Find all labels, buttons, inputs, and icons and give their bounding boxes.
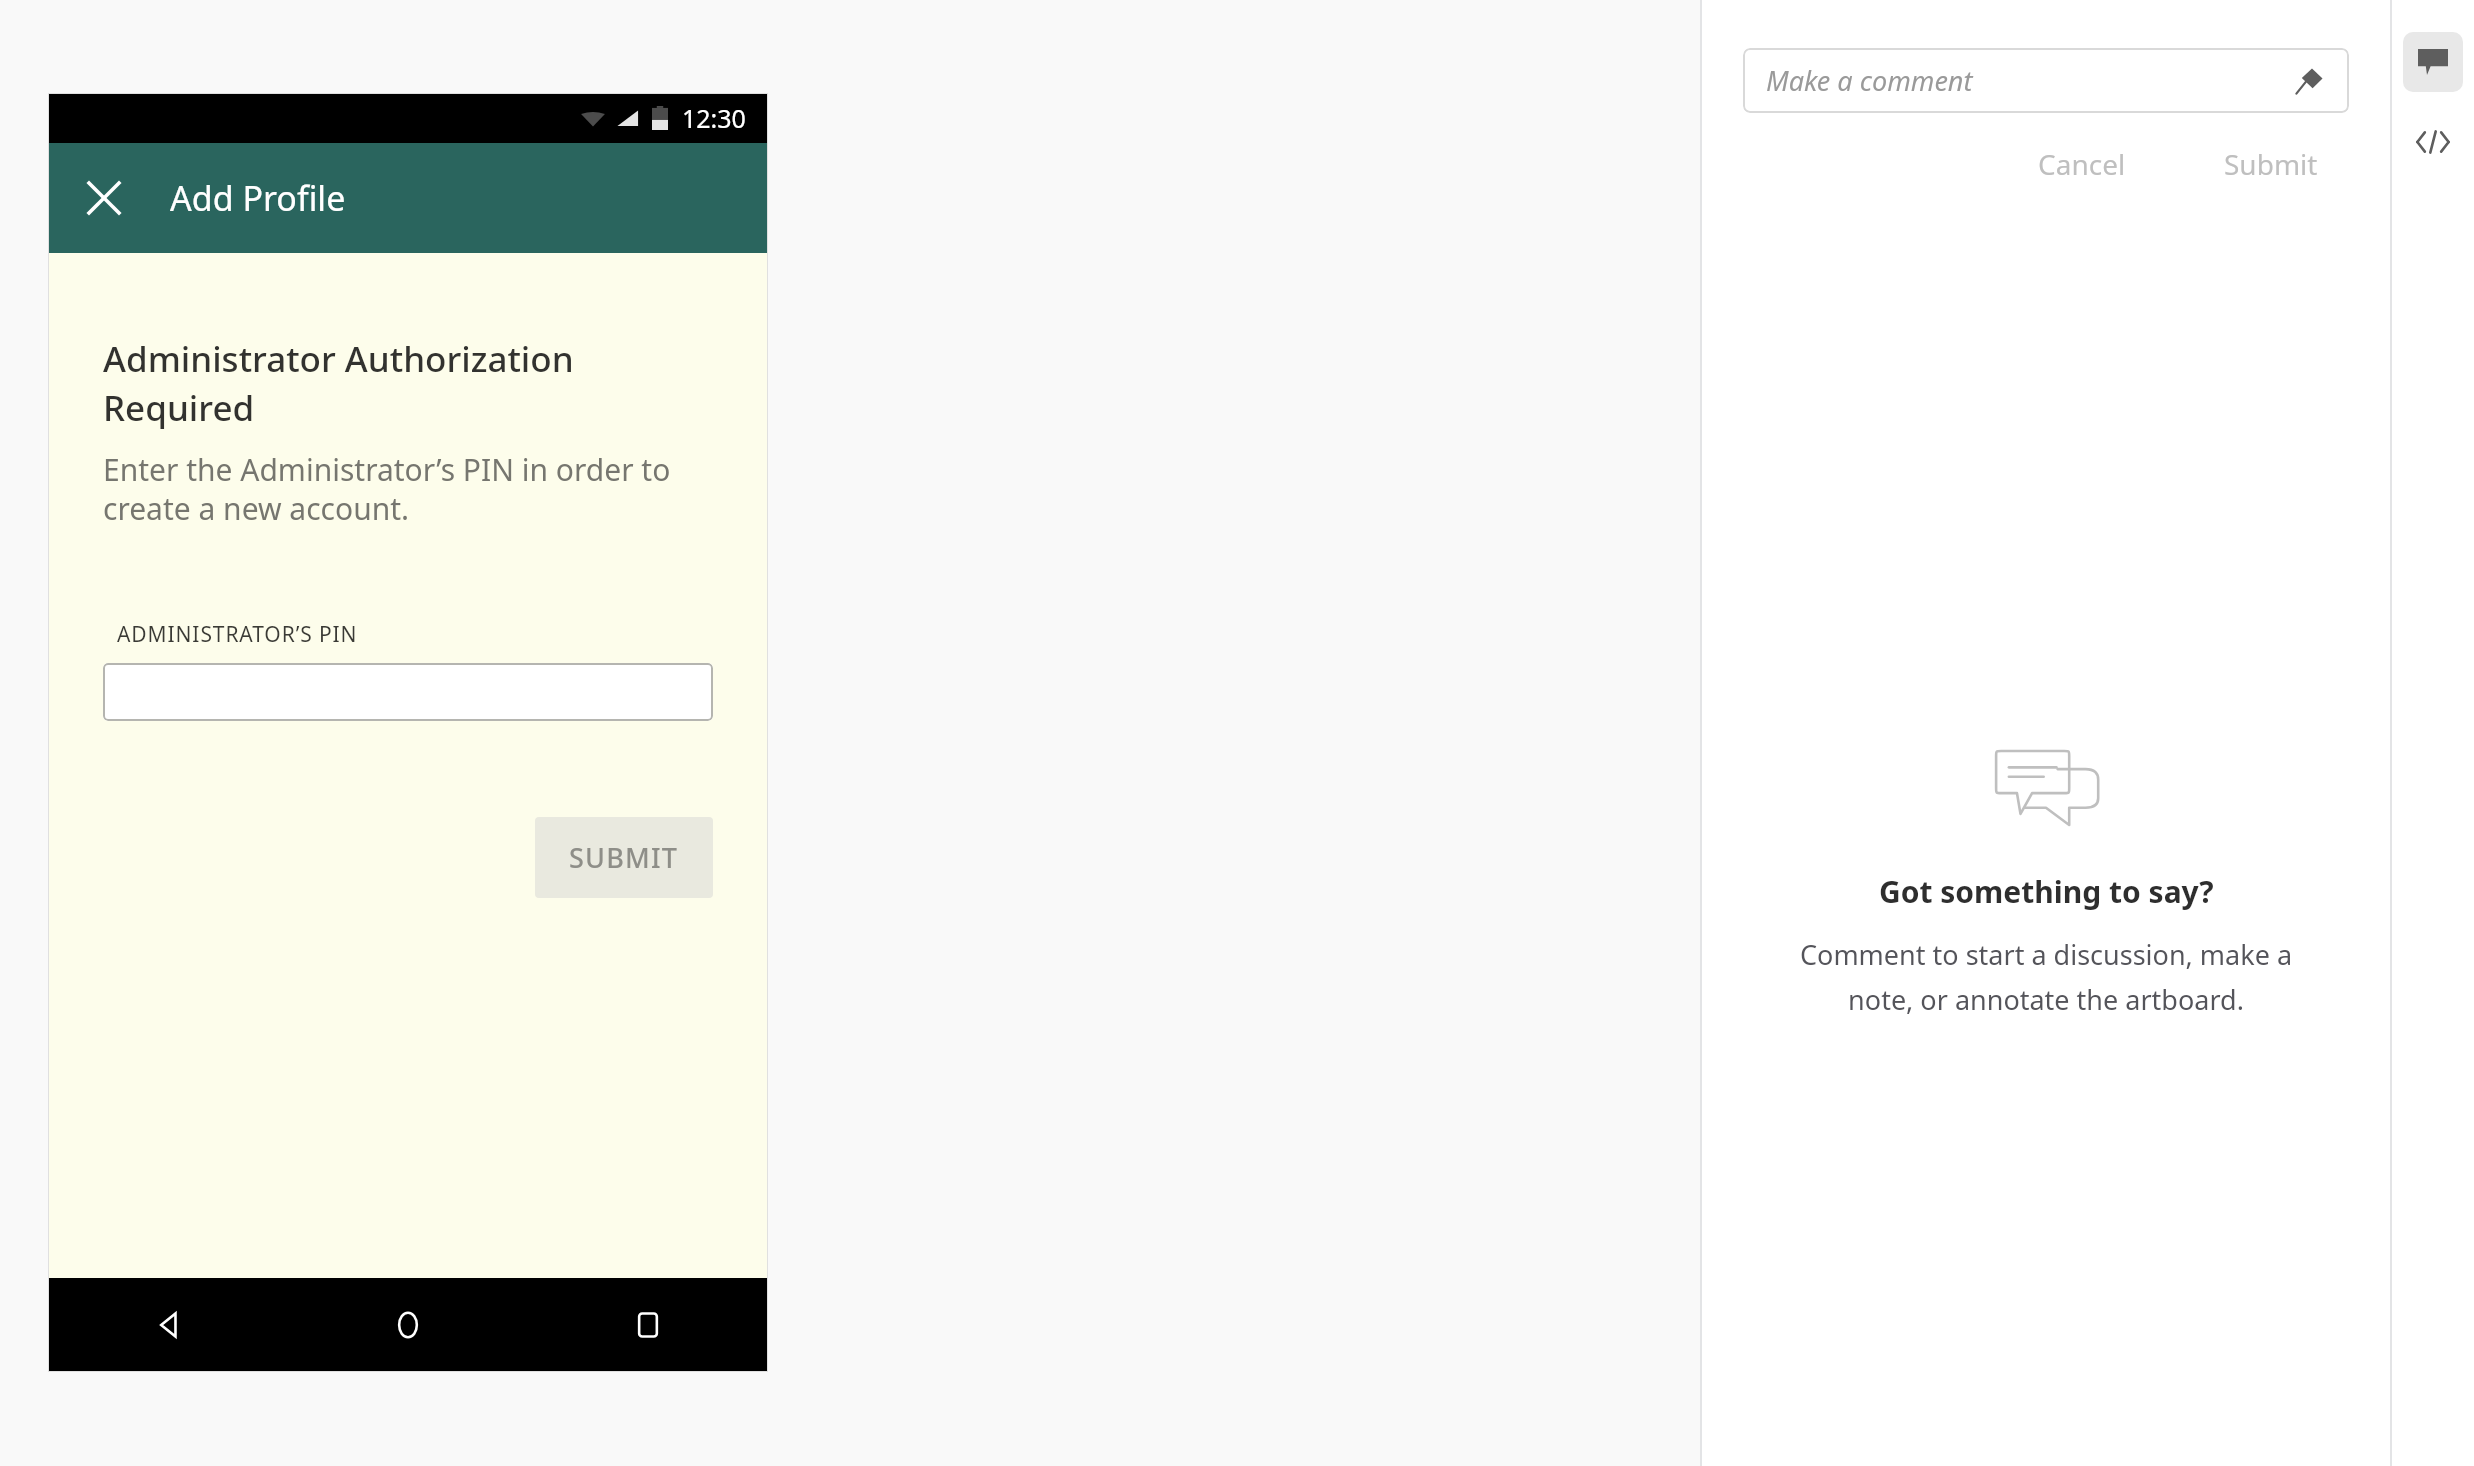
- staticText: SUBMIT: [569, 839, 679, 876]
- button[interactable]: Submit: [2210, 139, 2332, 189]
- staticText: 12:30: [682, 101, 746, 135]
- button[interactable]: Recents: [528, 1278, 768, 1372]
- staticText: Cancel: [2038, 145, 2126, 183]
- button[interactable]: Pin comment: [2292, 64, 2326, 98]
- staticText: Submit: [2224, 145, 2318, 183]
- staticText: Administrator Authorization Required: [103, 335, 713, 431]
- button[interactable]: Cancel: [2024, 139, 2140, 189]
- staticText: Enter the Administrator’s PIN in order t…: [103, 449, 713, 528]
- staticText: Got something to say?: [1879, 871, 2214, 912]
- button[interactable]: Administrator's PIN field: [103, 663, 713, 721]
- button[interactable]: Back: [48, 1278, 288, 1372]
- staticText: ADMINISTRATOR’S PIN: [117, 620, 358, 649]
- button[interactable]: Inspect code: [2403, 112, 2463, 172]
- staticText: Make a comment: [1766, 62, 1973, 99]
- staticText: Comment to start a discussion, make a no…: [1776, 936, 2316, 1018]
- button[interactable]: Comments: [2403, 32, 2463, 92]
- button[interactable]: Make a comment: [1743, 48, 2349, 113]
- button[interactable]: Close: [72, 166, 136, 230]
- button[interactable]: Home: [288, 1278, 528, 1372]
- button[interactable]: SUBMIT: [535, 817, 713, 898]
- staticText: Add Profile: [170, 175, 346, 221]
